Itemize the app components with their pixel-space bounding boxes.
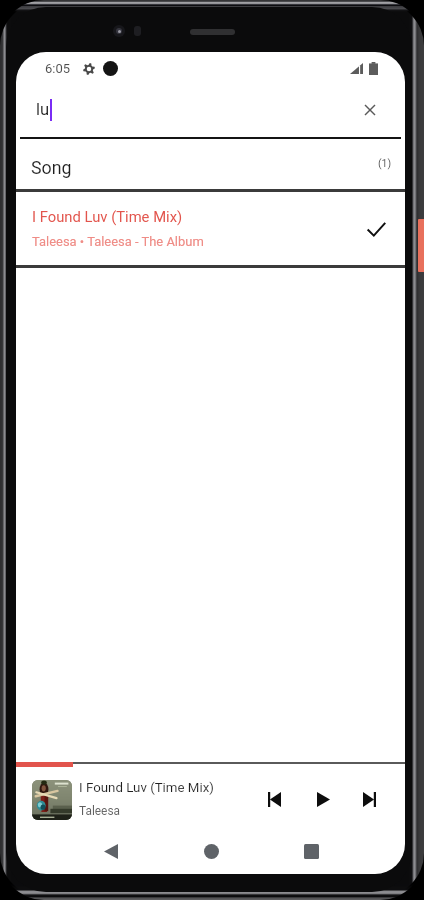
staticText: lu — [36, 100, 50, 119]
button[interactable]: Recent apps — [285, 828, 337, 874]
button[interactable]: Next track — [354, 784, 384, 814]
staticText: I Found Luv (Time Mix) — [32, 208, 183, 225]
button[interactable]: Clear search — [353, 93, 387, 127]
button[interactable]: Play — [308, 784, 338, 814]
staticText: I Found Luv (Time Mix) — [79, 780, 214, 796]
button[interactable]: I Found Luv (Time Mix) — [16, 192, 405, 268]
button[interactable]: Previous track — [259, 784, 289, 814]
staticText: Taleesa • Taleesa - The Album — [32, 234, 204, 249]
button[interactable]: Back — [85, 828, 137, 874]
staticText: Taleesa — [79, 804, 121, 818]
staticText: (1) — [378, 157, 392, 169]
button[interactable]: Home — [185, 828, 237, 874]
staticText: 6:05 — [45, 61, 71, 76]
staticText: Song — [31, 157, 72, 178]
